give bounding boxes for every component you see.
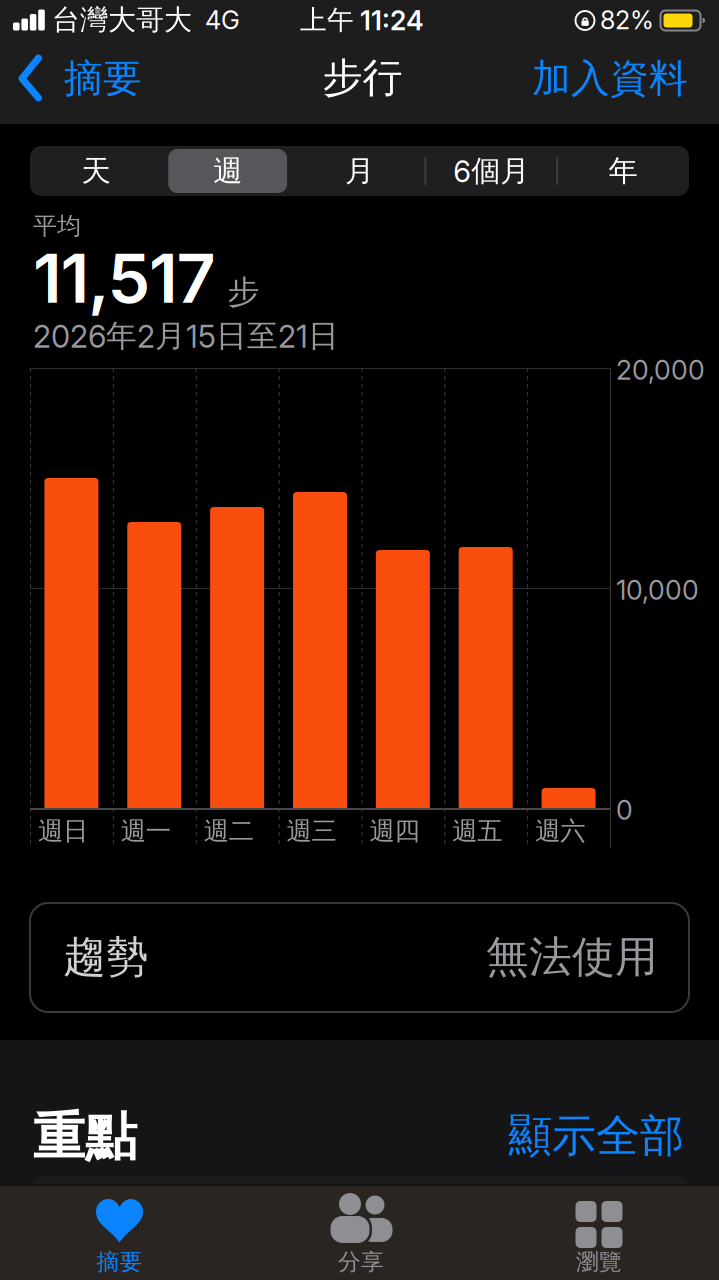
- staticText: 上午 11:24: [300, 4, 424, 36]
- staticText: 週六: [535, 815, 585, 846]
- staticText: 20,000: [616, 354, 705, 386]
- staticText: 瀏覽: [576, 1248, 622, 1276]
- staticText: 6個月: [453, 153, 529, 189]
- staticText: 分享: [338, 1248, 384, 1276]
- staticText: 週二: [204, 815, 254, 846]
- staticText: 台灣大哥大: [52, 3, 192, 37]
- staticText: 11,517: [33, 238, 215, 318]
- staticText: 2026年2月15日至21日: [33, 317, 339, 355]
- staticText: 週日: [38, 815, 88, 846]
- staticText: 步行: [322, 53, 402, 102]
- staticText: 天: [81, 153, 110, 189]
- staticText: 週五: [452, 815, 502, 846]
- staticText: 年: [609, 153, 638, 189]
- staticText: 重點: [33, 1105, 137, 1169]
- staticText: 趨勢: [63, 931, 149, 983]
- staticText: 週: [213, 153, 242, 189]
- staticText: 週一: [121, 815, 171, 846]
- staticText: 無法使用: [486, 931, 658, 983]
- staticText: 步: [227, 272, 259, 312]
- staticText: 4G: [205, 5, 240, 35]
- staticText: 摘要: [96, 1248, 142, 1276]
- staticText: 週四: [369, 815, 419, 846]
- staticText: 顯示全部: [508, 1109, 684, 1163]
- staticText: 平均: [33, 211, 81, 241]
- staticText: 摘要: [64, 55, 142, 102]
- staticText: 10,000: [616, 574, 699, 606]
- staticText: 82%: [600, 5, 654, 35]
- staticText: 加入資料: [532, 55, 688, 102]
- staticText: 週三: [287, 815, 337, 846]
- staticText: 0: [616, 794, 633, 826]
- staticText: 月: [345, 153, 374, 189]
